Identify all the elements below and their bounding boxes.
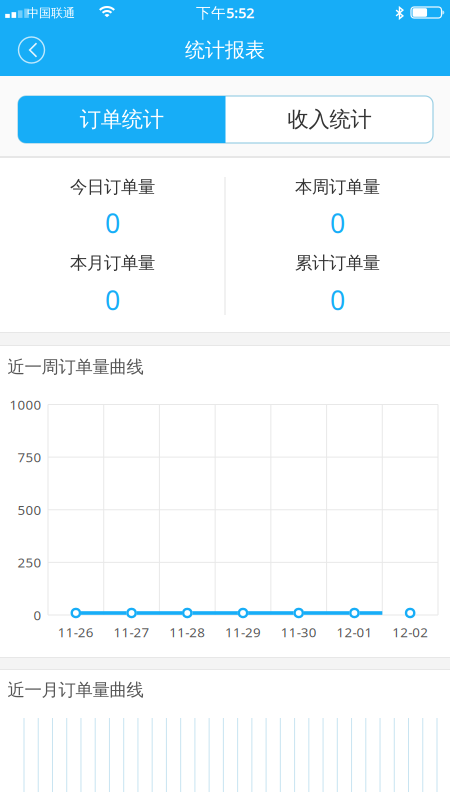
staticText: 收入统计 [287,106,371,133]
staticText: 500 [17,501,41,519]
button[interactable]: 收入统计 [18,96,433,143]
staticText: 11-27 [114,623,150,641]
staticText: 1000 [9,396,41,413]
staticText: 12-02 [392,623,428,641]
staticText: 今日订单量 [70,176,155,198]
staticText: 下午5:52 [196,3,254,22]
staticText: 订单统计 [80,106,164,133]
staticText: 近一月订单量曲线 [7,679,143,701]
staticText: 0 [330,282,345,318]
button[interactable]: 订单统计 [18,96,225,143]
staticText: 11-28 [169,623,205,641]
staticText: 750 [17,448,41,466]
staticText: 统计报表 [185,38,265,62]
staticText: 250 [17,553,41,571]
button[interactable]: 返回 [15,34,47,66]
staticText: 11-26 [58,623,94,641]
staticText: 本月订单量 [70,252,155,274]
staticText: 0 [33,606,41,624]
staticText: 近一周订单量曲线 [7,356,143,378]
staticText: 本周订单量 [295,176,380,198]
staticText: 0 [105,282,120,318]
staticText: 累计订单量 [295,252,380,274]
staticText: 11-30 [281,623,317,641]
staticText: 11-29 [225,623,261,641]
staticText: 中国联通 [27,6,75,20]
staticText: 0 [105,205,120,241]
staticText: 12-01 [336,623,372,641]
staticText: 0 [330,205,345,241]
